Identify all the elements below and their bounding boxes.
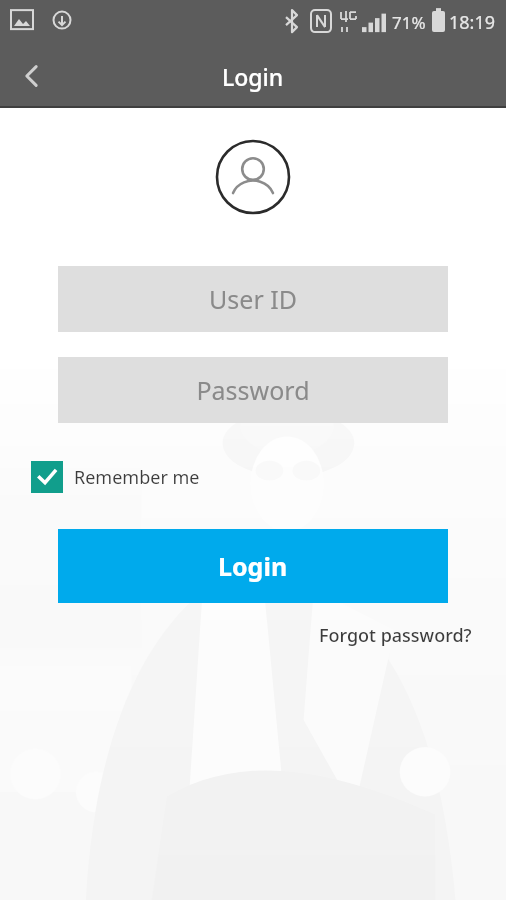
staticText: User ID — [209, 282, 297, 316]
button[interactable]: Password — [58, 357, 448, 423]
staticText: Login — [218, 549, 288, 583]
button[interactable]: Forgot password? — [311, 619, 506, 652]
button[interactable]: Back — [0, 44, 64, 108]
staticText: Password — [196, 373, 310, 407]
button[interactable]: User ID — [58, 266, 448, 332]
button[interactable]: Login — [58, 529, 448, 603]
staticText: Forgot password? — [319, 623, 472, 648]
staticText: Login — [222, 61, 284, 92]
staticText: Remember me — [74, 465, 200, 490]
staticText: 18:19 — [449, 10, 496, 35]
staticText: 71% — [392, 11, 426, 34]
button[interactable]: Remember me — [31, 459, 208, 495]
